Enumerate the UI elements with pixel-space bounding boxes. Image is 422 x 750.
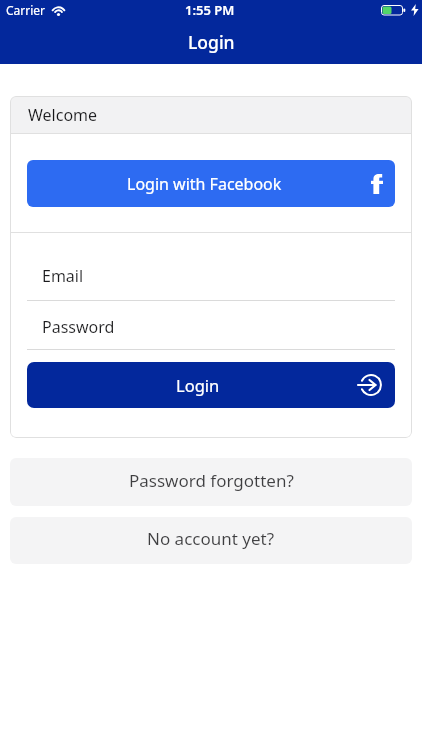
staticText: Welcome bbox=[28, 104, 98, 126]
staticText: Password bbox=[42, 316, 115, 338]
staticText: 1:55 PM bbox=[185, 1, 235, 19]
staticText: Login bbox=[188, 30, 235, 54]
staticText: Login bbox=[176, 374, 220, 396]
button[interactable]: Login with Facebook bbox=[27, 160, 395, 207]
button[interactable]: No account yet? bbox=[10, 517, 412, 564]
staticText: Carrier bbox=[6, 2, 46, 18]
staticText: Login with Facebook bbox=[127, 173, 282, 195]
staticText: No account yet? bbox=[147, 527, 275, 550]
staticText: Email bbox=[42, 265, 84, 287]
button[interactable]: Login bbox=[27, 362, 395, 408]
button[interactable]: Password forgotten? bbox=[10, 458, 412, 506]
staticText: Password forgotten? bbox=[129, 469, 294, 492]
button[interactable]: Email bbox=[10, 265, 412, 287]
button[interactable]: Password bbox=[10, 316, 412, 338]
